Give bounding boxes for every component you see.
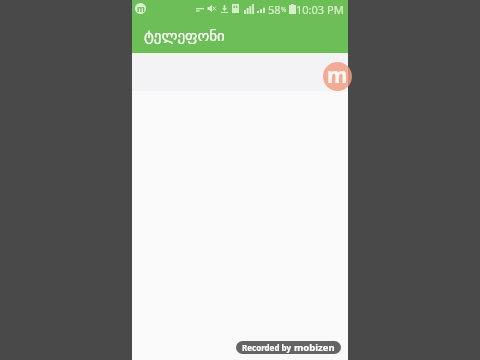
staticText: m [137,3,145,14]
staticText: % [281,5,287,14]
staticText: 10:03 PM [296,2,344,17]
button[interactable]: Mobizen screen recorder [323,62,352,91]
staticText: m [327,62,348,90]
button[interactable]: Recorded by [236,341,341,354]
staticText: Recorded by [242,342,294,353]
staticText: mobizen [294,341,335,354]
other: Mobizen notification [135,3,146,14]
staticText: ტელეფონი [144,27,225,44]
staticText: 58 [268,2,281,17]
button[interactable]: ტელეფონი [138,21,258,49]
